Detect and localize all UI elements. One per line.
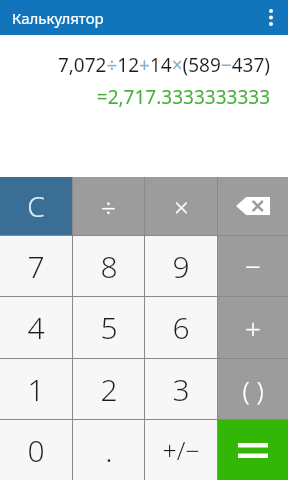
staticText: + bbox=[245, 309, 261, 347]
staticText: 9 bbox=[172, 246, 190, 287]
staticText: 6 bbox=[172, 307, 190, 348]
staticText: 7 bbox=[27, 246, 45, 287]
staticText: 4 bbox=[27, 307, 45, 348]
staticText: 7,072÷12+14×(589−437) bbox=[57, 52, 270, 78]
staticText: 3 bbox=[172, 369, 190, 410]
staticText: 0 bbox=[27, 430, 45, 471]
staticText: 8 bbox=[100, 246, 118, 287]
staticText: − bbox=[245, 247, 261, 285]
staticText: +/− bbox=[162, 433, 200, 467]
button[interactable]: More options bbox=[254, 0, 288, 35]
staticText: . bbox=[105, 430, 113, 471]
staticText: =2,717.3333333333 bbox=[96, 84, 270, 110]
staticText: ÷ bbox=[101, 189, 116, 224]
button[interactable]: 5 bbox=[73, 297, 144, 358]
button[interactable]: ( ) bbox=[218, 359, 288, 419]
button[interactable]: Equals bbox=[218, 420, 288, 480]
staticText: ( ) bbox=[242, 372, 264, 407]
button[interactable]: + bbox=[218, 297, 288, 358]
button[interactable]: 3 bbox=[145, 359, 217, 419]
button[interactable]: ÷ bbox=[73, 177, 144, 235]
button[interactable]: − bbox=[218, 236, 288, 296]
button[interactable]: . bbox=[73, 420, 144, 480]
button[interactable]: × bbox=[145, 177, 217, 235]
staticText: 2 bbox=[100, 369, 118, 410]
staticText: 1 bbox=[27, 369, 45, 410]
button[interactable]: Backspace bbox=[218, 177, 288, 235]
button[interactable]: 7 bbox=[0, 236, 72, 296]
button[interactable]: +/− bbox=[145, 420, 217, 480]
button[interactable]: 1 bbox=[0, 359, 72, 419]
button[interactable]: 8 bbox=[73, 236, 144, 296]
button[interactable]: C bbox=[0, 177, 72, 235]
button[interactable]: 0 bbox=[0, 420, 72, 480]
staticText: × bbox=[174, 189, 189, 224]
button[interactable]: 2 bbox=[73, 359, 144, 419]
staticText: 5 bbox=[100, 307, 118, 348]
staticText: C bbox=[27, 187, 45, 225]
button[interactable]: 4 bbox=[0, 297, 72, 358]
button[interactable]: 6 bbox=[145, 297, 217, 358]
staticText: Калькулятор bbox=[12, 8, 104, 28]
button[interactable]: 9 bbox=[145, 236, 217, 296]
